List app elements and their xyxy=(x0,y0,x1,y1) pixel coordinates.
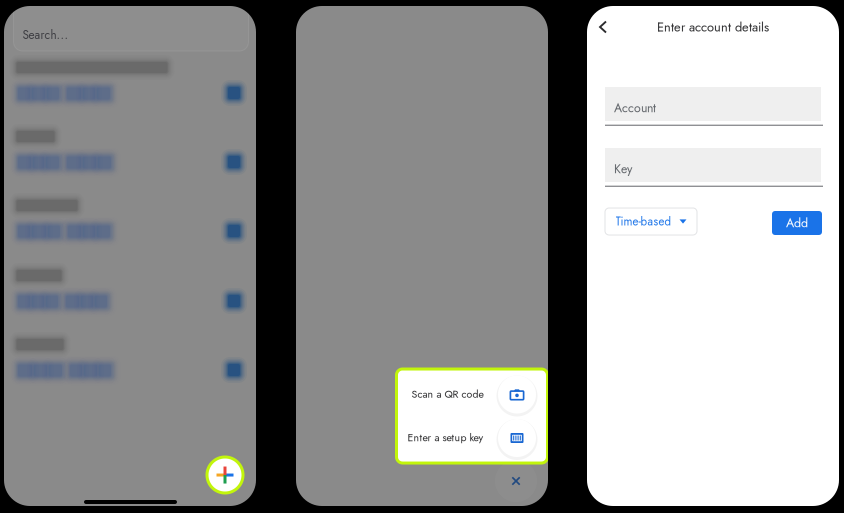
button[interactable]: Close xyxy=(494,459,538,503)
button[interactable]: Enter a setup key xyxy=(396,414,547,460)
staticText: Time-based xyxy=(615,213,671,230)
staticText: Account xyxy=(614,99,656,117)
button[interactable]: Add account xyxy=(202,452,248,498)
staticText: Enter account details xyxy=(657,18,769,36)
staticText: Enter a setup key xyxy=(407,430,483,445)
staticText: Search... xyxy=(22,26,68,43)
button[interactable]: Time-based xyxy=(605,208,697,235)
button[interactable]: Add xyxy=(772,211,822,235)
staticText: Scan a QR code xyxy=(411,386,483,402)
staticText: Add xyxy=(786,214,808,232)
button[interactable]: Scan a QR code xyxy=(396,371,547,417)
staticText: Key xyxy=(614,160,632,178)
button[interactable]: Back xyxy=(590,14,616,40)
